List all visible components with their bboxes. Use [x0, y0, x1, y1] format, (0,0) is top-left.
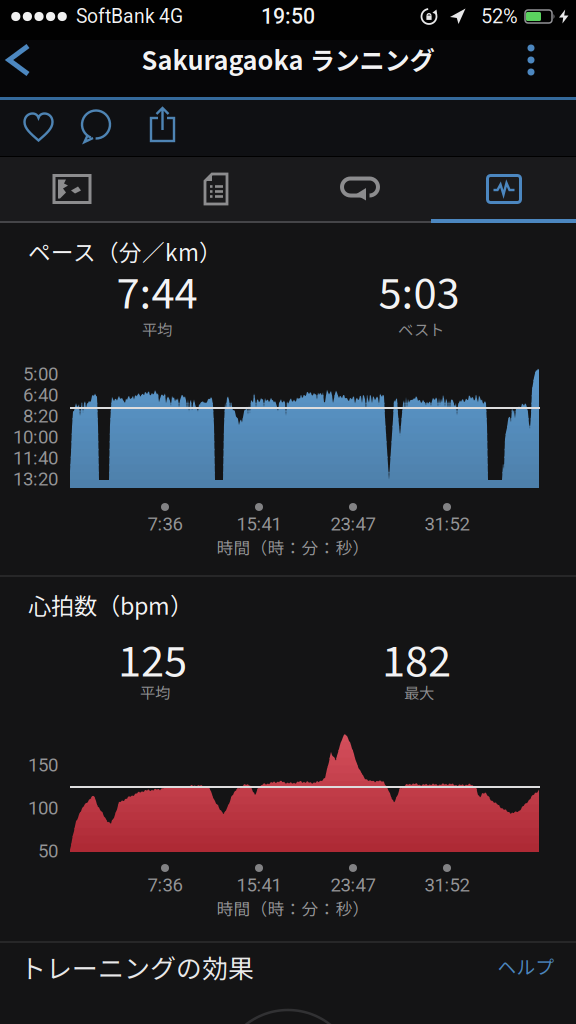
staticText: 心拍数（bpm） — [28, 588, 193, 621]
button[interactable]: Map — [0, 157, 144, 221]
button[interactable]: Details — [144, 157, 288, 221]
staticText: 6:40 — [23, 384, 58, 406]
staticText: 15:41 — [236, 874, 281, 896]
staticText: ベスト — [398, 318, 444, 340]
staticText: 時間（時：分：秒） — [216, 896, 369, 920]
button[interactable]: Share — [146, 106, 180, 144]
staticText: ヘルプ — [497, 952, 554, 979]
button[interactable]: Laps — [288, 157, 432, 221]
staticText: 31:52 — [424, 874, 469, 896]
staticText: 31:52 — [424, 513, 469, 535]
staticText: 15:41 — [236, 513, 281, 535]
staticText: 5:00 — [23, 363, 58, 385]
staticText: トレーニングの効果 — [20, 948, 254, 986]
button[interactable]: Comment — [79, 110, 113, 144]
staticText: 時間（時：分：秒） — [216, 535, 369, 559]
staticText: 4G — [159, 5, 183, 28]
staticText: 23:47 — [330, 513, 375, 535]
button[interactable]: More options — [516, 37, 546, 83]
button[interactable]: Like — [22, 111, 54, 143]
staticText: 10:00 — [13, 426, 58, 448]
staticText: Sakuragaoka ランニング — [141, 41, 434, 77]
staticText: 23:47 — [330, 874, 375, 896]
staticText: 7:36 — [147, 513, 182, 535]
button[interactable]: Back — [0, 37, 40, 83]
button[interactable]: Help — [481, 946, 571, 986]
staticText: 最大 — [404, 681, 434, 703]
staticText: 7:36 — [147, 874, 182, 896]
staticText: 50 — [38, 840, 58, 862]
button[interactable]: Charts — [432, 157, 576, 221]
staticText: 150 — [28, 754, 58, 776]
staticText: 19:50 — [261, 4, 315, 29]
staticText: 8:20 — [23, 405, 58, 427]
staticText: ペース（分／km） — [28, 235, 222, 267]
staticText: 13:20 — [13, 468, 58, 490]
staticText: 125 — [118, 629, 187, 695]
staticText: 平均 — [142, 318, 172, 340]
staticText: SoftBank — [76, 5, 155, 28]
staticText: 7:44 — [116, 261, 197, 327]
staticText: 182 — [382, 629, 451, 695]
staticText: 5:03 — [378, 261, 459, 327]
staticText: 52% — [481, 5, 518, 28]
staticText: 平均 — [140, 681, 170, 703]
staticText: 100 — [28, 797, 58, 819]
staticText: 11:40 — [13, 447, 58, 469]
